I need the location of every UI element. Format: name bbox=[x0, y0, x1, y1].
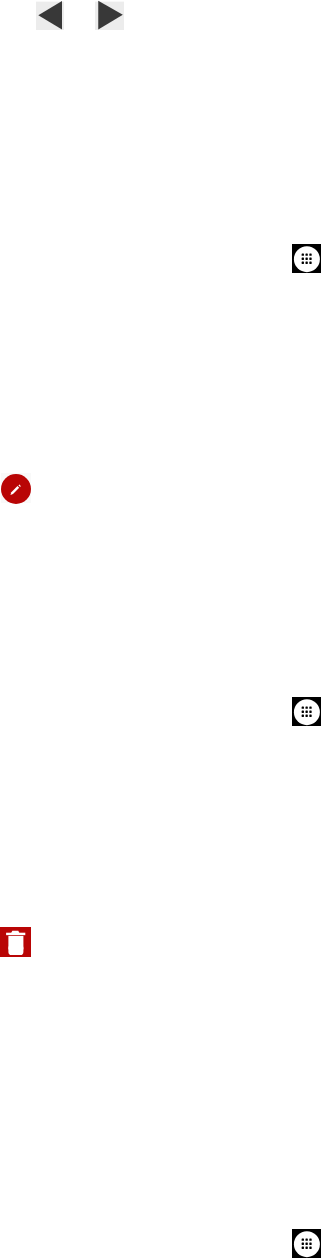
button[interactable]: Apps bbox=[292, 1229, 321, 1258]
button[interactable]: Delete bbox=[0, 927, 31, 957]
button[interactable]: Edit bbox=[1, 473, 31, 503]
button[interactable]: Apps bbox=[292, 244, 321, 273]
button[interactable]: Apps bbox=[292, 697, 321, 726]
button[interactable]: Previous bbox=[36, 0, 64, 30]
button[interactable]: Next bbox=[95, 0, 124, 30]
